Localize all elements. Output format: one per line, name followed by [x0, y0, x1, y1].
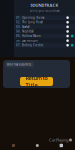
- staticText: 05. Hollow Moon: [16, 34, 41, 38]
- staticText: 01. Opening Theme: [16, 16, 45, 19]
- staticText: 02. The Long Road: [16, 20, 43, 24]
- button[interactable]: 07. Ending Credits: [14, 43, 75, 48]
- button[interactable]: 02. The Long Road: [14, 20, 75, 25]
- button[interactable]: 01. Opening Theme: [14, 15, 75, 20]
- button[interactable]: 04. Nightfall: [14, 29, 75, 34]
- button[interactable]: 03. Starfall: [14, 25, 75, 29]
- staticText: 03. Starfall: [16, 25, 30, 29]
- staticText: SOUNDTRACK: [30, 2, 58, 8]
- button[interactable]: 06. Last Horizon: [14, 38, 75, 43]
- staticText: Return to Title: [25, 74, 47, 89]
- staticText: 04. Nightfall: [16, 30, 34, 33]
- button[interactable]: Return to Title: [20, 77, 53, 86]
- staticText: Error has occurred.: [7, 63, 32, 66]
- staticText: select your soundtrack: [29, 9, 59, 13]
- staticText: CarPlaying: [49, 137, 68, 143]
- button[interactable]: 05. Hollow Moon: [14, 34, 75, 38]
- staticText: 07. Ending Credits: [16, 43, 43, 47]
- staticText: 06. Last Horizon: [16, 39, 38, 42]
